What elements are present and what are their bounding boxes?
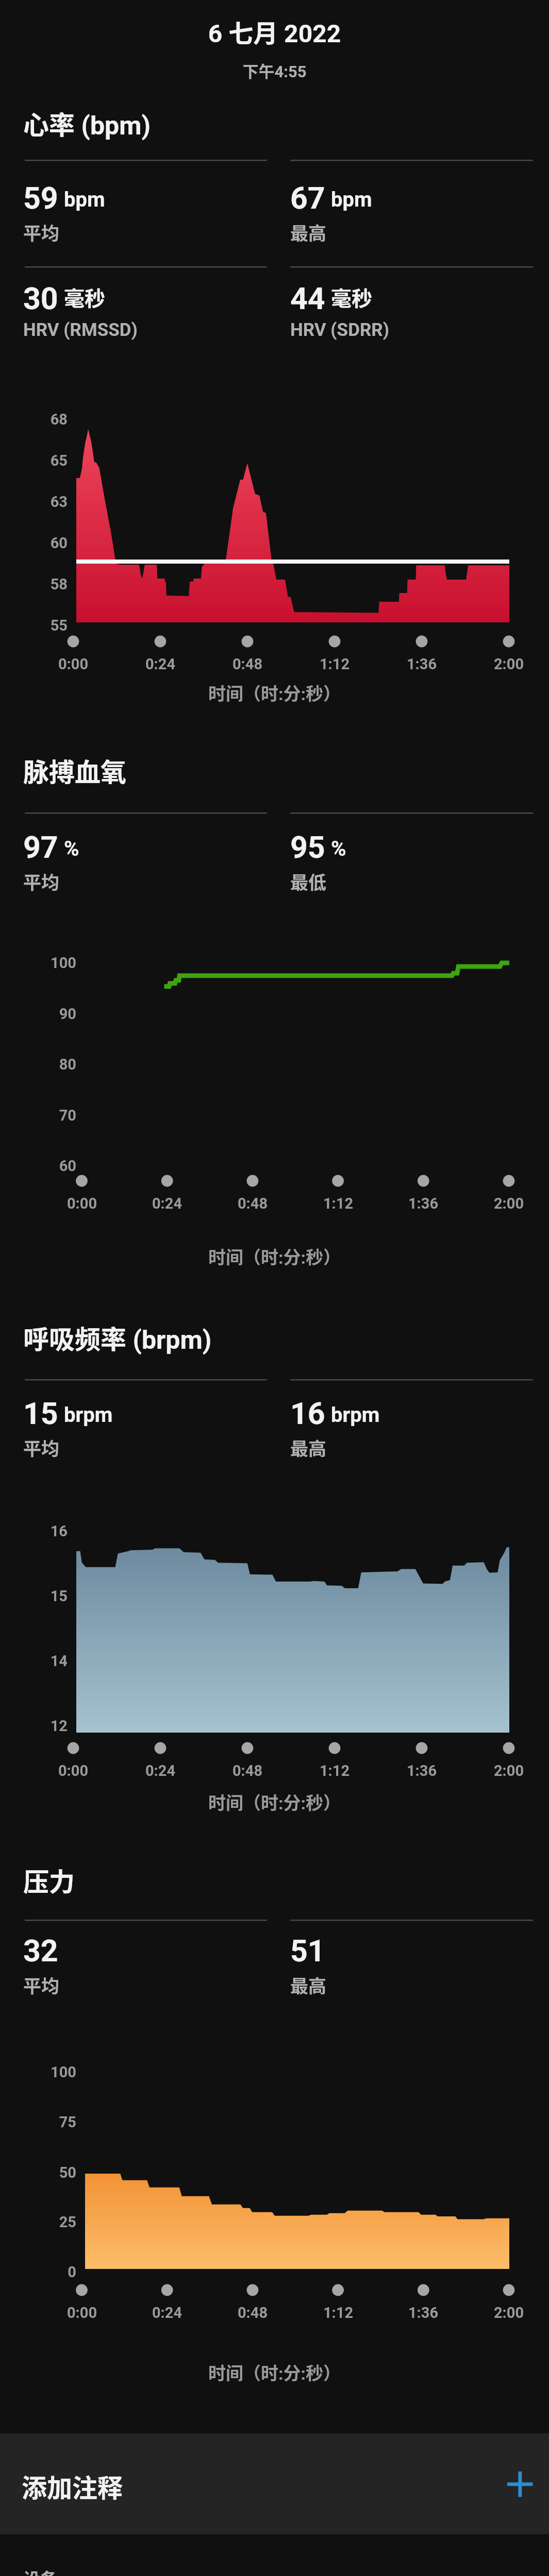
staticText: 0 (0, 2263, 76, 2281)
button[interactable]: Add note (495, 2459, 546, 2511)
staticText: % (64, 837, 79, 861)
staticText: HRV (RMSSD) (23, 319, 138, 341)
staticText: 添加注释 (22, 2468, 123, 2504)
staticText: 平均 (23, 1434, 60, 1461)
staticText: 脉搏血氧 (23, 752, 126, 789)
staticText: brpm (64, 1403, 113, 1427)
staticText: 时间（时:分:秒） (0, 1789, 549, 1815)
staticText: 1:36 (386, 655, 458, 673)
staticText: 平均 (23, 868, 60, 894)
staticText: % (331, 837, 346, 861)
staticText: 1:12 (298, 1762, 371, 1780)
staticText: 0:24 (131, 2304, 203, 2321)
staticText: 0:00 (46, 1195, 118, 1212)
staticText: 0:00 (46, 2304, 118, 2321)
staticText: 最高 (290, 1434, 327, 1461)
staticText: 15 (0, 1587, 68, 1605)
staticText: 68 (0, 411, 68, 428)
staticText: 设备 (23, 2566, 57, 2576)
staticText: 1:12 (302, 2304, 374, 2321)
staticText: 最高 (290, 1972, 327, 1998)
staticText: 1:12 (298, 655, 371, 673)
staticText: bpm (331, 188, 372, 212)
staticText: 下午4:55 (0, 59, 549, 82)
staticText: 50 (0, 2164, 76, 2181)
staticText: 65 (0, 452, 68, 469)
staticText: 1:12 (302, 1195, 374, 1212)
staticText: 1:36 (386, 1762, 458, 1780)
staticText: 60 (0, 534, 68, 552)
staticText: 6 七月 2022 (0, 13, 549, 49)
staticText: 最高 (290, 219, 327, 245)
staticText: 80 (0, 1056, 76, 1073)
staticText: 16 (0, 1522, 68, 1540)
staticText: 呼吸频率 (brpm) (23, 1319, 212, 1356)
staticText: 59 (23, 180, 58, 216)
staticText: 0:24 (124, 1762, 196, 1780)
staticText: 14 (0, 1652, 68, 1670)
staticText: 0:48 (217, 2304, 289, 2321)
staticText: 75 (0, 2113, 76, 2131)
staticText: 55 (0, 617, 68, 634)
staticText: 2:00 (473, 1762, 545, 1780)
staticText: 51 (290, 1933, 325, 1969)
staticText: 毫秒 (331, 282, 372, 312)
button[interactable]: 添加注释 (0, 2433, 549, 2534)
staticText: brpm (331, 1403, 380, 1427)
staticText: 1:36 (387, 2304, 459, 2321)
staticText: 44 (290, 281, 325, 316)
staticText: 70 (0, 1107, 76, 1124)
staticText: 32 (23, 1933, 58, 1969)
staticText: 25 (0, 2213, 76, 2231)
staticText: 2:00 (473, 655, 545, 673)
staticText: 95 (290, 829, 325, 865)
staticText: 平均 (23, 1972, 60, 1998)
staticText: 16 (290, 1396, 325, 1431)
staticText: 最低 (290, 868, 327, 894)
staticText: 90 (0, 1005, 76, 1023)
staticText: 60 (0, 1157, 76, 1175)
staticText: 时间（时:分:秒） (0, 2360, 549, 2385)
staticText: 12 (0, 1717, 68, 1735)
staticText: 0:48 (217, 1195, 289, 1212)
staticText: 平均 (23, 219, 60, 245)
staticText: 67 (290, 180, 325, 216)
staticText: 时间（时:分:秒） (0, 1244, 549, 1269)
staticText: bpm (64, 188, 105, 212)
staticText: 毫秒 (64, 282, 105, 312)
staticText: 压力 (23, 1861, 75, 1899)
staticText: 0:48 (211, 655, 284, 673)
staticText: 30 (23, 281, 58, 316)
staticText: 1:36 (387, 1195, 459, 1212)
staticText: 63 (0, 493, 68, 511)
staticText: 15 (23, 1396, 58, 1431)
staticText: 100 (0, 954, 76, 972)
staticText: 0:00 (37, 1762, 109, 1780)
staticText: 2:00 (473, 2304, 545, 2321)
staticText: 100 (0, 2063, 76, 2081)
staticText: 0:24 (124, 655, 196, 673)
staticText: 0:24 (131, 1195, 203, 1212)
staticText: 时间（时:分:秒） (0, 680, 549, 705)
staticText: 2:00 (473, 1195, 545, 1212)
staticText: 58 (0, 575, 68, 593)
staticText: 97 (23, 829, 58, 865)
staticText: 0:00 (37, 655, 109, 673)
staticText: HRV (SDRR) (290, 319, 390, 341)
staticText: 0:48 (211, 1762, 284, 1780)
staticText: 心率 (bpm) (23, 105, 151, 142)
